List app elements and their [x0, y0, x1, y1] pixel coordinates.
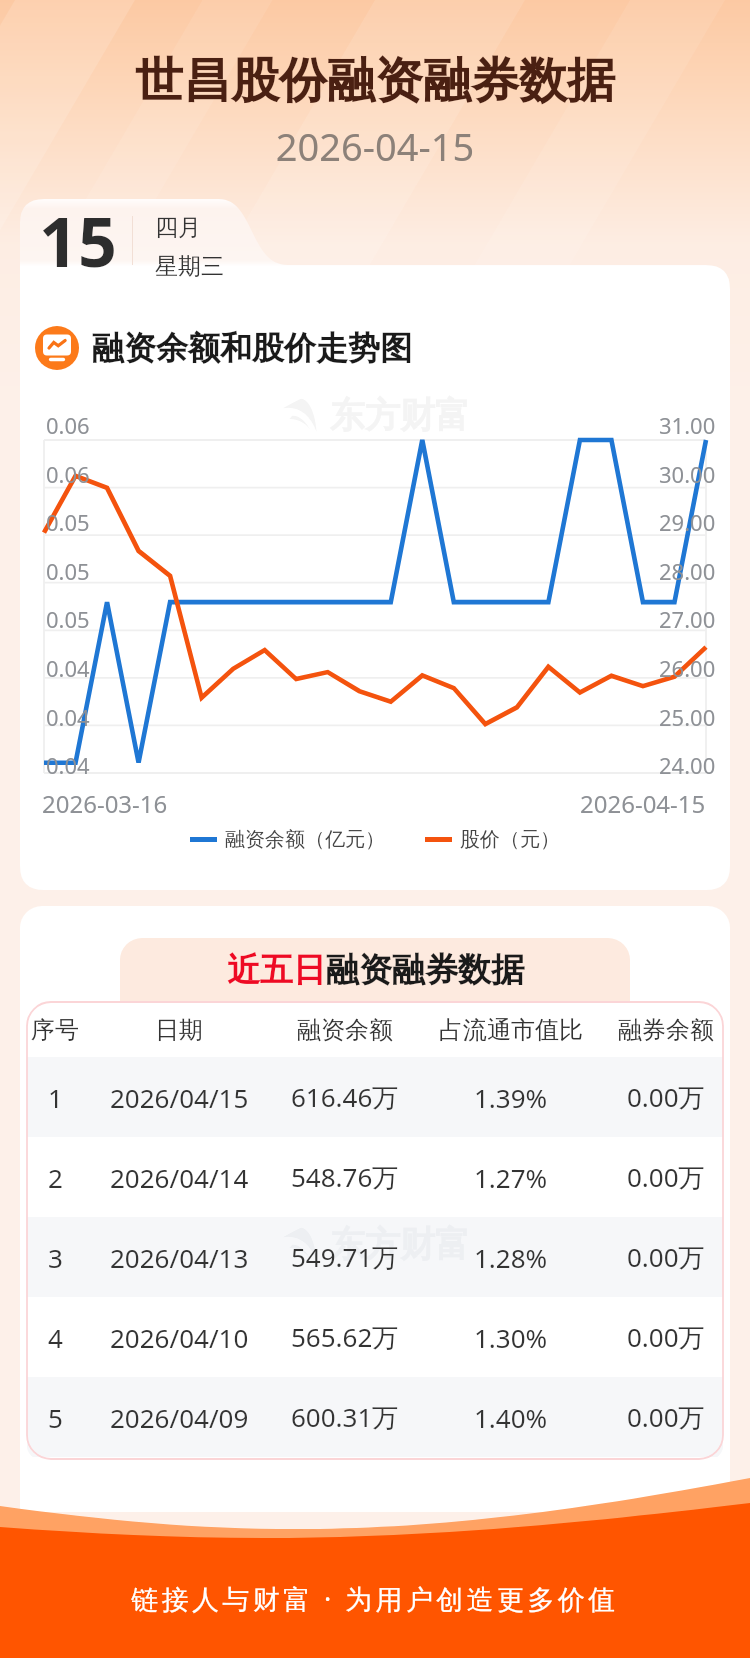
staticText: 26.00 — [659, 653, 716, 683]
staticText: 0.05 — [46, 556, 90, 586]
staticText: 600.31万 — [291, 1399, 399, 1435]
staticText: 0.00万 — [627, 1079, 705, 1115]
staticText: 1.39% — [474, 1080, 548, 1115]
staticText: 融资余额（亿元） — [225, 827, 385, 852]
other: 走势图 — [35, 326, 79, 370]
staticText: 0.00万 — [627, 1319, 705, 1355]
staticText: 31.00 — [659, 410, 716, 440]
button[interactable]: 4 — [27, 1297, 723, 1377]
staticText: 29.00 — [659, 507, 716, 537]
staticText: 2026/04/09 — [110, 1400, 249, 1435]
staticText: 0.04 — [46, 702, 90, 732]
staticText: 2026-04-15 — [580, 787, 706, 820]
staticText: 3 — [48, 1240, 63, 1275]
staticText: 0.06 — [46, 410, 90, 440]
staticText: 27.00 — [659, 604, 716, 634]
staticText: 1.28% — [474, 1240, 548, 1275]
staticText: 0.00万 — [627, 1399, 705, 1435]
staticText: 0.00万 — [627, 1239, 705, 1275]
staticText: 0.05 — [46, 604, 90, 634]
staticText: 东方财富 — [330, 1222, 470, 1266]
staticText: 1.30% — [474, 1320, 548, 1355]
staticText: 日期 — [155, 1015, 203, 1045]
staticText: 星期三 — [155, 252, 224, 281]
button[interactable]: 走势图 — [35, 326, 412, 370]
staticText: 25.00 — [659, 702, 716, 732]
staticText: 链接人与财富 · 为用户创造更多价值 — [0, 1580, 750, 1617]
staticText: 548.76万 — [291, 1159, 399, 1195]
staticText: 0.06 — [46, 459, 90, 489]
staticText: 549.71万 — [291, 1239, 399, 1275]
staticText: 近五日融资融券数据 — [227, 949, 524, 991]
staticText: 1 — [48, 1080, 63, 1115]
staticText: 0.04 — [46, 750, 90, 780]
staticText: 2026-03-16 — [42, 787, 168, 820]
staticText: 28.00 — [659, 556, 716, 586]
staticText: 1.27% — [474, 1160, 548, 1195]
button[interactable]: 东方财富 — [27, 1217, 723, 1297]
staticText: 占流通市值比 — [439, 1015, 583, 1045]
staticText: 1.40% — [474, 1400, 548, 1435]
staticText: 2026/04/10 — [110, 1320, 249, 1355]
staticText: 融资余额 — [297, 1015, 393, 1045]
staticText: 616.46万 — [291, 1079, 399, 1115]
staticText: 30.00 — [659, 459, 716, 489]
staticText: 565.62万 — [291, 1319, 399, 1355]
staticText: 2026/04/15 — [110, 1080, 249, 1115]
staticText: 股价（元） — [460, 827, 560, 852]
staticText: 2026/04/14 — [110, 1160, 249, 1195]
staticText: 融券余额 — [618, 1015, 714, 1045]
staticText: 24.00 — [659, 750, 716, 780]
staticText: 0.05 — [46, 507, 90, 537]
staticText: 2026-04-15 — [0, 120, 750, 172]
staticText: 四月 — [155, 213, 201, 242]
button[interactable]: 2 — [27, 1137, 723, 1217]
staticText: 融资余额和股价走势图 — [92, 328, 412, 368]
button[interactable]: 5 — [27, 1377, 723, 1457]
staticText: 15 — [39, 194, 117, 287]
button[interactable]: 1 — [27, 1057, 723, 1137]
staticText: 0.00万 — [627, 1159, 705, 1195]
staticText: 2026/04/13 — [110, 1240, 249, 1275]
staticText: 5 — [48, 1400, 63, 1435]
staticText: 2 — [48, 1160, 63, 1195]
staticText: 东方财富 — [330, 393, 470, 437]
staticText: 序号 — [31, 1015, 79, 1045]
staticText: 0.04 — [46, 653, 90, 683]
staticText: 4 — [48, 1320, 63, 1355]
staticText: 世昌股份融资融券数据 — [0, 51, 750, 111]
